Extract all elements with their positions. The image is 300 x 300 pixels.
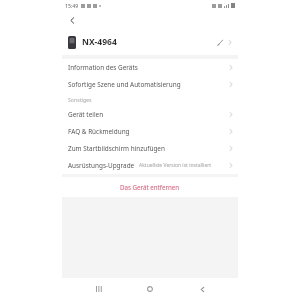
staticText: Information des Geräts [68, 63, 138, 72]
button[interactable]: Zum Startbildschirm hinzufügen [62, 140, 238, 157]
button[interactable]: Zurück [64, 12, 80, 28]
staticText: Zum Startbildschirm hinzufügen [68, 144, 165, 153]
staticText: Aktuellste Version ist installiert [139, 162, 212, 169]
staticText: FAQ & Rückmeldung [68, 127, 130, 136]
staticText: Ausrüstungs-Upgrade [68, 161, 135, 170]
button[interactable]: Startseite [135, 278, 165, 300]
button[interactable]: Sofortige Szene und Automatisierung [62, 76, 238, 93]
staticText: 15:49 [65, 2, 79, 9]
staticText: Sofortige Szene und Automatisierung [68, 80, 181, 89]
button[interactable]: Das Gerät entfernen [62, 177, 238, 197]
button[interactable]: Umbenennen [213, 35, 227, 49]
button[interactable]: Übersicht [84, 278, 114, 300]
button[interactable]: NX-4964 [62, 29, 238, 55]
button[interactable]: Gerät teilen [62, 106, 238, 123]
button[interactable]: FAQ & Rückmeldung [62, 123, 238, 140]
staticText: Das Gerät entfernen [120, 183, 180, 191]
staticText: Gerät teilen [68, 110, 104, 119]
staticText: Sonstiges [68, 96, 92, 103]
button[interactable]: Zurück [187, 278, 217, 300]
staticText: NX-4964 [82, 36, 117, 48]
button[interactable]: Ausrüstungs-Upgrade [62, 157, 238, 174]
button[interactable]: Information des Geräts [62, 59, 238, 76]
